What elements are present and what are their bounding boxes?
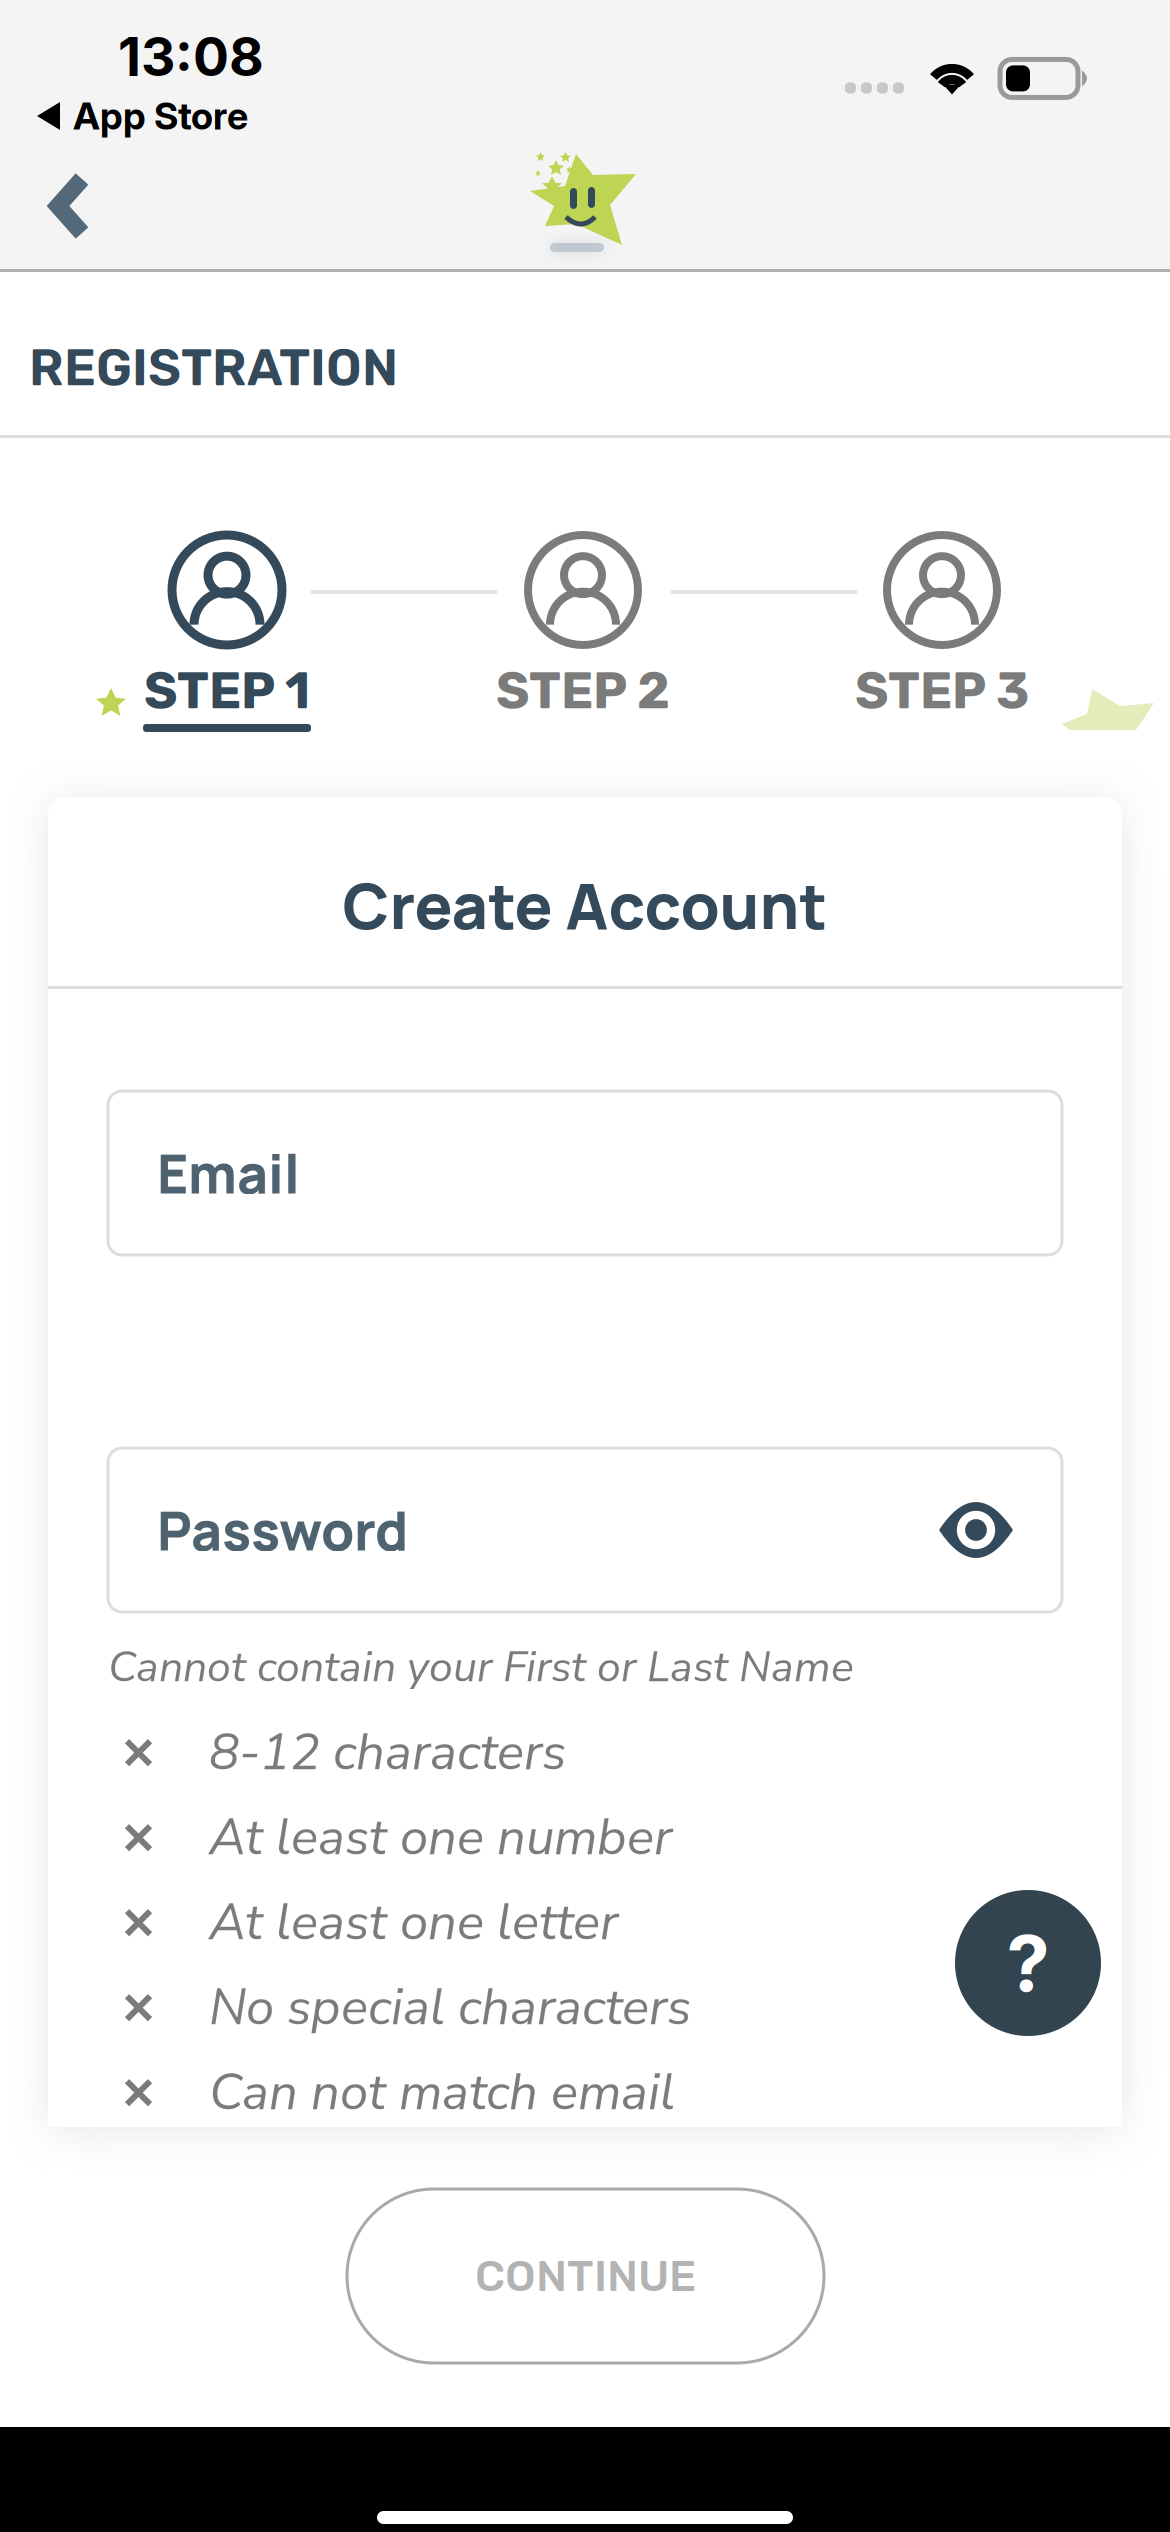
button[interactable]: Password [108, 1448, 1062, 1612]
staticText: At least one number [209, 1803, 672, 1872]
button[interactable]: Help [955, 1890, 1101, 2036]
staticText: CONTINUE [475, 2250, 696, 2302]
staticText: 8-12 characters [209, 1718, 566, 1787]
button[interactable]: STEP 1 [107, 535, 347, 732]
staticText: App Store [73, 93, 248, 139]
staticText: STEP 1 [144, 661, 310, 721]
staticText: REGISTRATION [29, 338, 398, 398]
button[interactable]: STEP 3 [822, 535, 1062, 732]
staticText: At least one letter [209, 1888, 618, 1957]
staticText: Can not match email [209, 2058, 675, 2127]
button[interactable]: CONTINUE [347, 2189, 824, 2363]
staticText: STEP 3 [855, 661, 1029, 721]
button[interactable]: Back [0, 143, 122, 269]
staticText: STEP 2 [496, 661, 670, 721]
staticText: Password [157, 1494, 408, 1566]
staticText: Cannot contain your First or Last Name [108, 1638, 854, 1696]
staticText: ? [1006, 1916, 1049, 2010]
staticText: No special characters [209, 1973, 691, 2042]
staticText: Email [157, 1137, 300, 1209]
staticText: 13:08 [118, 24, 264, 89]
button[interactable]: STEP 2 [463, 535, 703, 732]
button[interactable]: Email [108, 1091, 1062, 1255]
staticText: Create Account [342, 862, 827, 948]
